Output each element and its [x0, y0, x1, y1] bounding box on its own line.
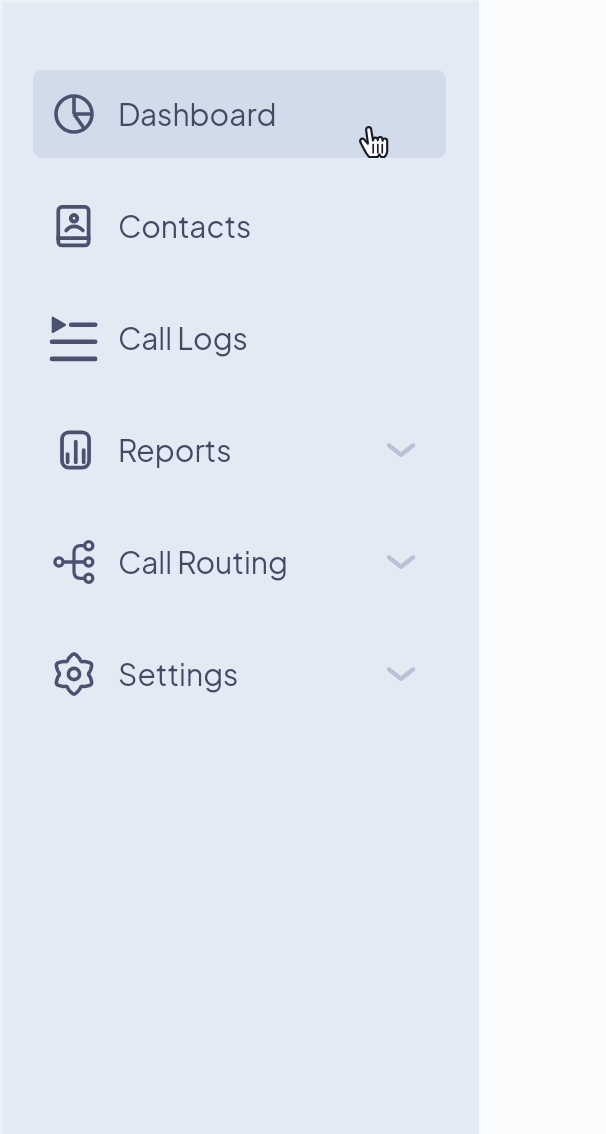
button[interactable]: Call Logs [33, 294, 446, 382]
button[interactable]: Settings [33, 630, 446, 718]
button[interactable]: Dashboard [33, 70, 446, 158]
button[interactable]: Contacts [33, 182, 446, 270]
button[interactable]: Reports [33, 406, 446, 494]
button[interactable]: Call Routing [33, 518, 446, 606]
staticText: Reports [118, 431, 232, 469]
staticText: Dashboard [118, 95, 277, 133]
staticText: Call Routing [118, 543, 288, 581]
staticText: Contacts [118, 207, 252, 245]
staticText: Settings [118, 655, 239, 693]
staticText: Call Logs [118, 319, 248, 357]
